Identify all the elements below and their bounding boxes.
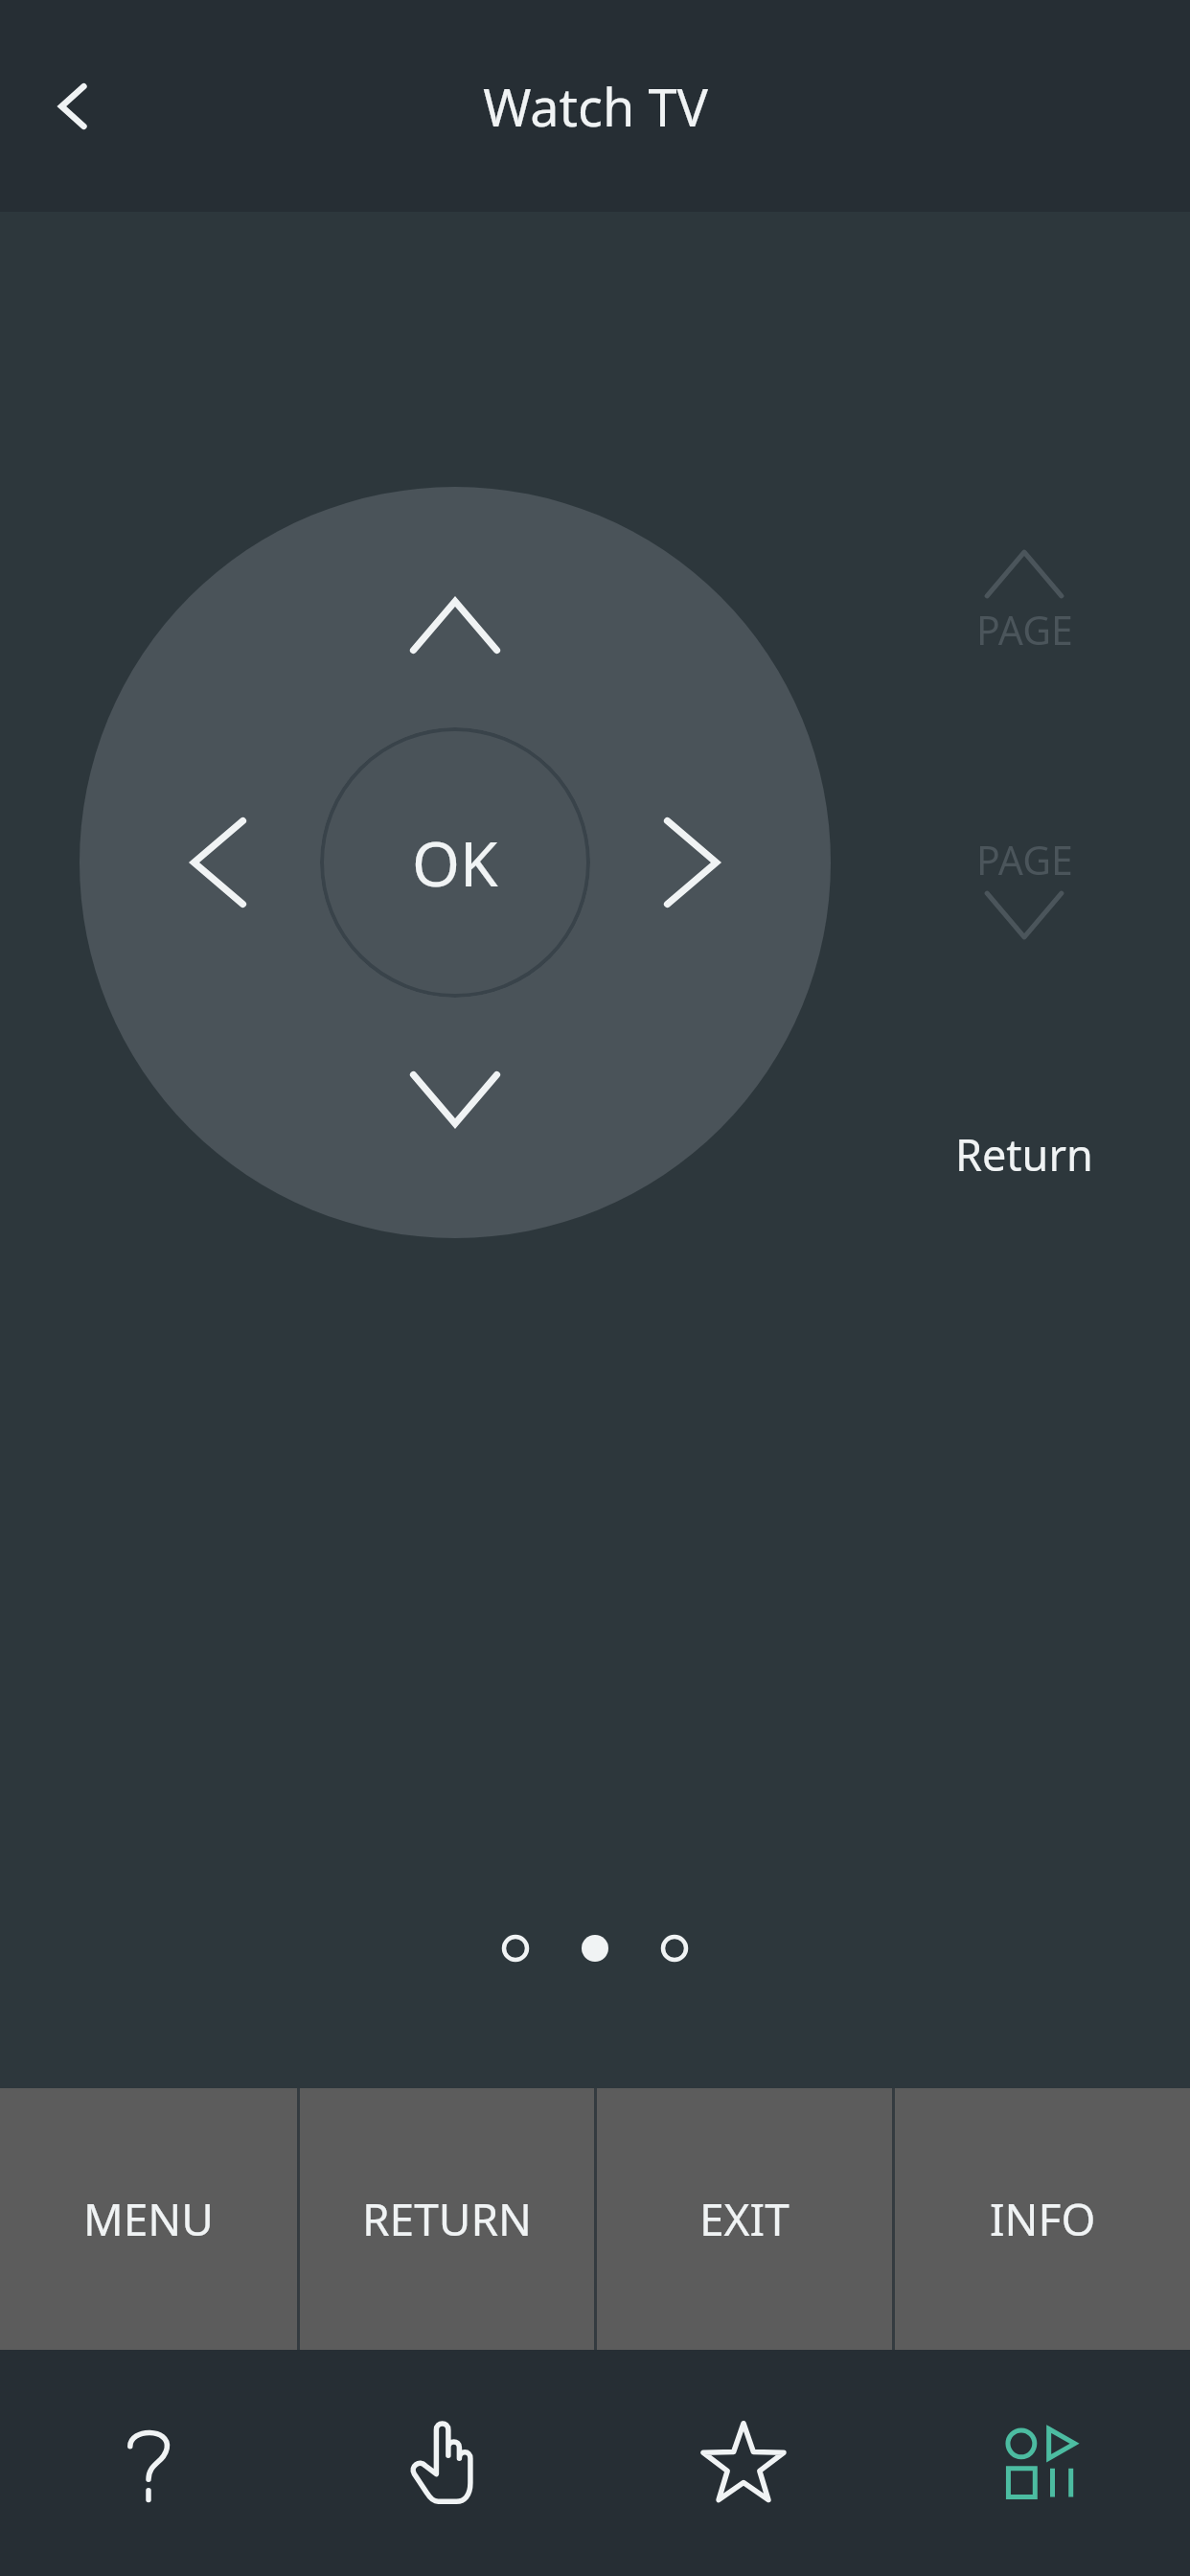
button[interactable]: PAGE bbox=[919, 549, 1130, 656]
button[interactable]: MENU bbox=[0, 2088, 297, 2350]
button[interactable]: Touchpad bbox=[297, 2350, 594, 2576]
button[interactable]: Up bbox=[359, 544, 551, 707]
button[interactable]: INFO bbox=[895, 2088, 1190, 2350]
staticText: INFO bbox=[990, 2189, 1096, 2249]
button[interactable]: Right bbox=[610, 767, 773, 958]
button[interactable]: PAGE bbox=[919, 833, 1130, 940]
button[interactable]: Favorites bbox=[594, 2350, 892, 2576]
button[interactable]: OK bbox=[320, 727, 590, 998]
button[interactable]: Devices bbox=[892, 2350, 1190, 2576]
staticText: PAGE bbox=[976, 833, 1073, 886]
staticText: OK bbox=[412, 821, 498, 905]
button[interactable]: Left bbox=[137, 767, 300, 958]
staticText: Return bbox=[955, 1125, 1093, 1184]
staticText: EXIT bbox=[699, 2189, 790, 2249]
staticText: RETURN bbox=[362, 2189, 532, 2249]
button[interactable]: Return bbox=[909, 1106, 1139, 1202]
button[interactable]: Down bbox=[359, 1018, 551, 1181]
staticText: MENU bbox=[83, 2189, 214, 2249]
button[interactable]: EXIT bbox=[597, 2088, 892, 2350]
button[interactable]: Help bbox=[0, 2350, 297, 2576]
staticText: PAGE bbox=[976, 603, 1073, 656]
button[interactable]: Back bbox=[17, 50, 130, 163]
button[interactable]: RETURN bbox=[300, 2088, 594, 2350]
staticText: Watch TV bbox=[483, 71, 708, 142]
